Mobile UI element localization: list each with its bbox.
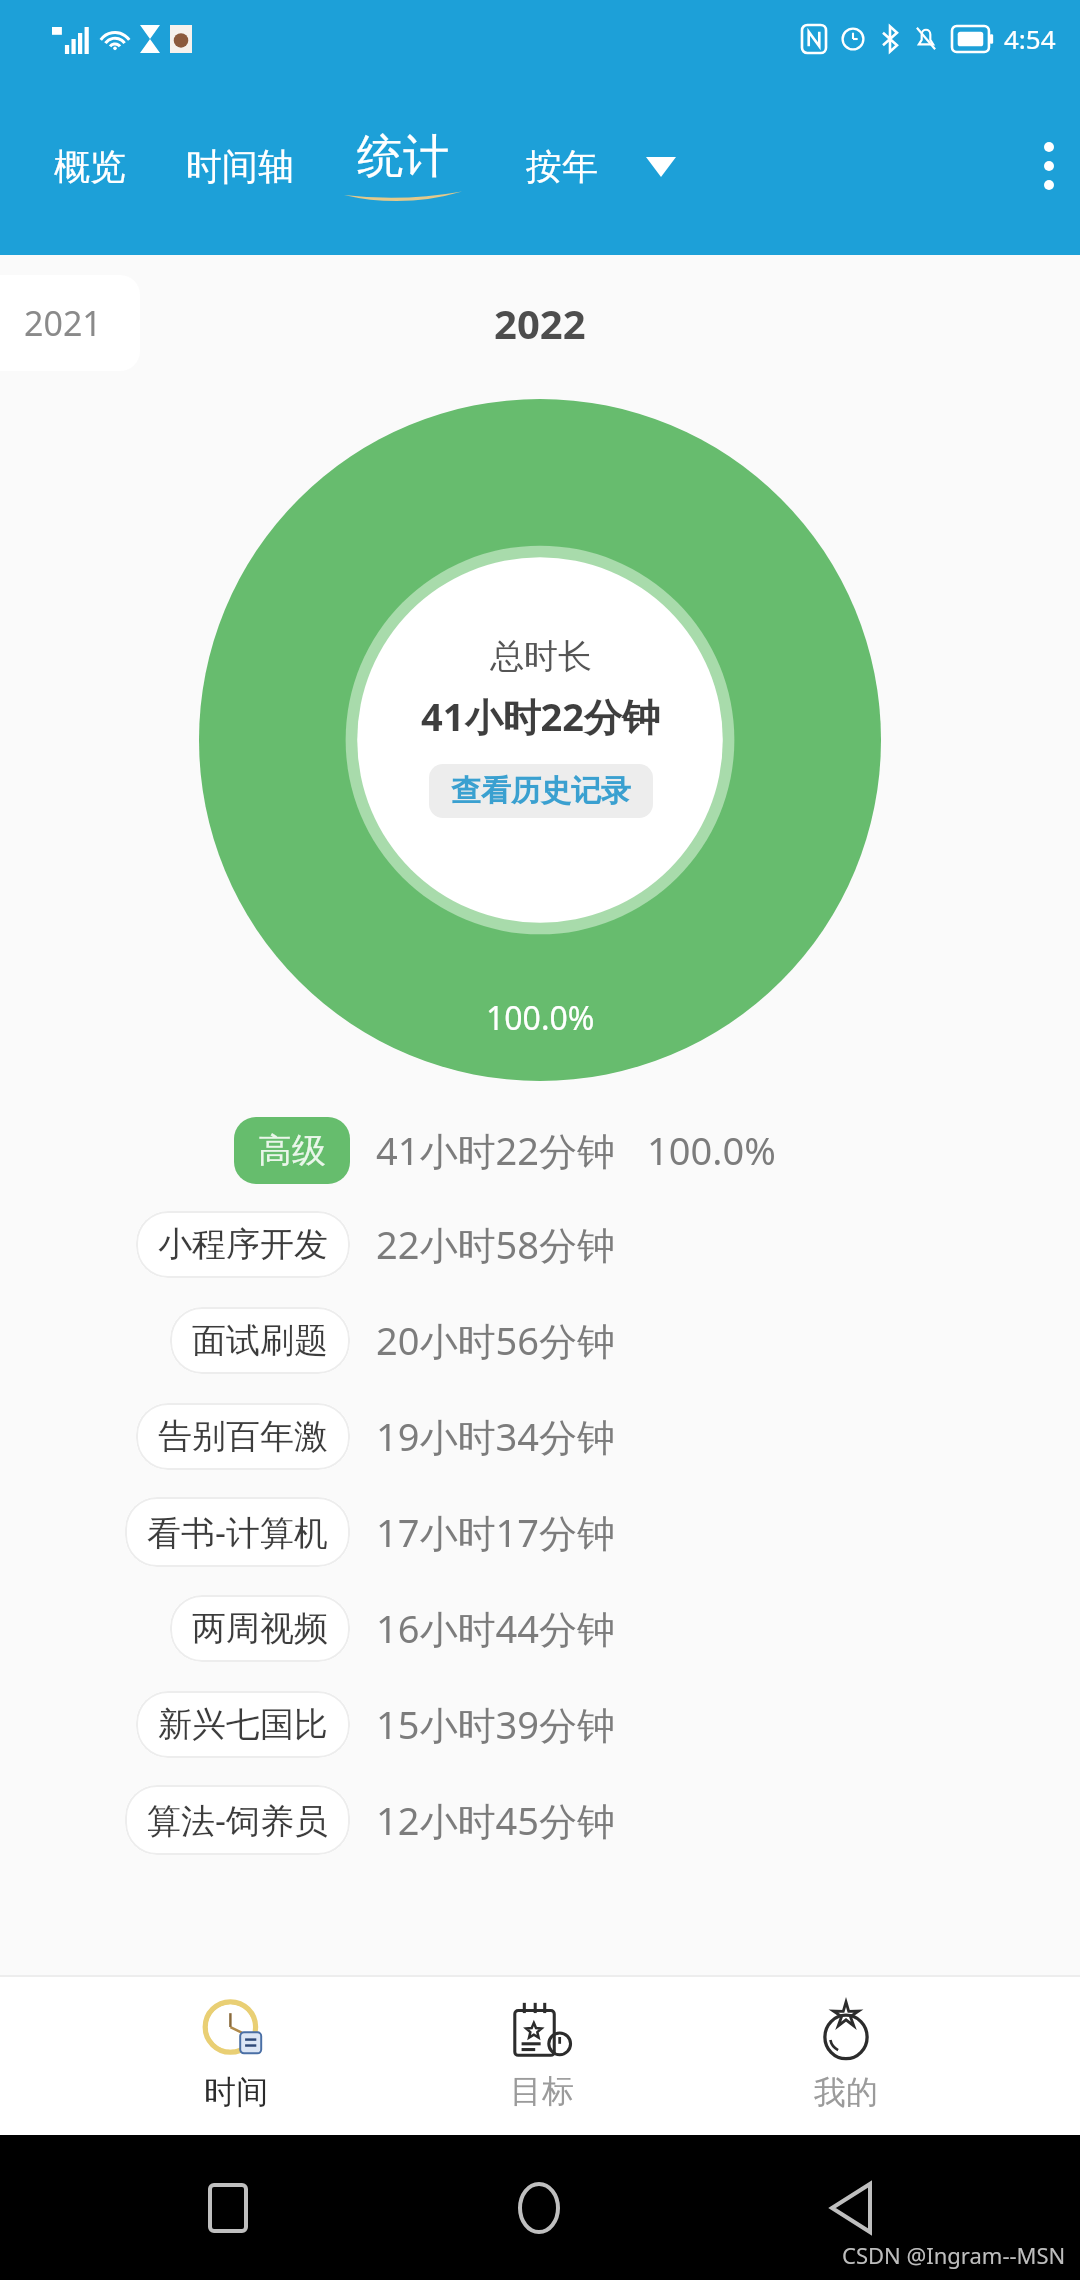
button[interactable]: 看书-计算机: [0, 1484, 1080, 1580]
staticText: 19小时34分钟: [376, 1410, 615, 1462]
staticText: 算法-饲养员: [147, 1797, 328, 1843]
staticText: 41小时22分钟: [421, 690, 660, 742]
button[interactable]: 目标: [472, 1989, 612, 2121]
staticText: 16小时44分钟: [376, 1602, 615, 1654]
staticText: 新兴七国比: [158, 1703, 328, 1746]
staticText: 时间: [204, 2072, 268, 2112]
staticText: 12小时45分钟: [376, 1794, 615, 1846]
staticText: 面试刷题: [192, 1319, 328, 1362]
staticText: 两周视频: [192, 1607, 328, 1650]
staticText: 查看历史记录: [451, 772, 631, 810]
staticText: 41小时22分钟: [376, 1124, 615, 1176]
button[interactable]: More options: [1018, 122, 1080, 210]
staticText: 17小时17分钟: [376, 1506, 615, 1558]
staticText: 总时长: [490, 635, 592, 678]
staticText: 告别百年激: [158, 1415, 328, 1458]
staticText: 小程序开发: [158, 1223, 328, 1266]
staticText: 高级: [258, 1129, 326, 1172]
staticText: 我的: [814, 2072, 878, 2112]
button[interactable]: 我的: [777, 1988, 915, 2122]
button[interactable]: 新兴七国比: [0, 1676, 1080, 1772]
staticText: 2022: [494, 296, 586, 350]
button[interactable]: 时间: [165, 1988, 307, 2122]
staticText: 15小时39分钟: [376, 1698, 615, 1750]
button[interactable]: Back: [812, 2164, 890, 2252]
staticText: 100.0%: [647, 1124, 776, 1176]
staticText: 统计: [357, 128, 449, 186]
button[interactable]: 查看历史记录: [429, 764, 653, 818]
button[interactable]: 2022: [484, 286, 596, 360]
button[interactable]: 面试刷题: [0, 1292, 1080, 1388]
staticText: 20小时56分钟: [376, 1314, 615, 1366]
button[interactable]: 高级: [0, 1104, 1080, 1196]
button[interactable]: 2021: [0, 275, 140, 371]
staticText: 按年: [526, 144, 598, 189]
button[interactable]: 概览: [46, 128, 134, 205]
button[interactable]: Home: [500, 2164, 578, 2252]
button[interactable]: 按年: [518, 128, 684, 205]
staticText: 概览: [54, 144, 126, 189]
staticText: 看书-计算机: [147, 1509, 328, 1555]
button[interactable]: 告别百年激: [0, 1388, 1080, 1484]
button[interactable]: 统计: [338, 128, 468, 204]
staticText: 目标: [510, 2071, 574, 2111]
staticText: 100.0%: [486, 996, 595, 1040]
button[interactable]: 小程序开发: [0, 1196, 1080, 1292]
staticText: 时间轴: [186, 144, 294, 189]
staticText: 4:54: [1004, 21, 1056, 56]
staticText: 2021: [24, 300, 102, 346]
staticText: 22小时58分钟: [376, 1218, 615, 1270]
button[interactable]: 两周视频: [0, 1580, 1080, 1676]
button[interactable]: Recents: [190, 2165, 266, 2251]
button[interactable]: 算法-饲养员: [0, 1772, 1080, 1868]
staticText: CSDN @Ingram--MSN: [842, 2240, 1066, 2270]
button[interactable]: 时间轴: [178, 128, 302, 205]
